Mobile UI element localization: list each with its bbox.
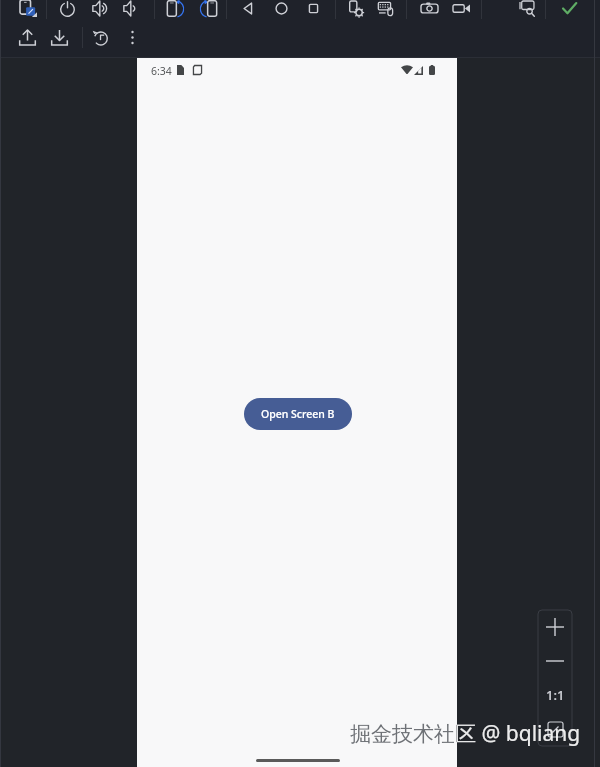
staticText: 掘金技术社区 @ bqliang (350, 719, 457, 748)
button[interactable]: Upload (14, 26, 40, 48)
button[interactable]: 1:1 (538, 678, 572, 712)
button[interactable]: Rotate right (195, 0, 221, 19)
button[interactable]: Download (46, 26, 72, 48)
button[interactable]: Zoom out (538, 644, 572, 678)
staticText: Open Screen B (261, 407, 335, 421)
button[interactable]: Rotate left (162, 0, 188, 19)
button[interactable]: Virtual keyboard (373, 0, 399, 19)
button[interactable]: Volume up (87, 0, 113, 19)
button[interactable]: Open Screen B (244, 398, 352, 430)
staticText: 1:1 (546, 686, 565, 704)
button[interactable]: More options (119, 26, 145, 48)
button[interactable]: Take screenshot (416, 0, 442, 19)
button[interactable]: Record screen (448, 0, 474, 19)
button[interactable]: Zoom in (538, 610, 572, 644)
button[interactable]: Apply (556, 0, 582, 19)
button[interactable]: History (87, 26, 113, 48)
button[interactable]: Device settings (343, 0, 369, 19)
button[interactable]: Volume down (118, 0, 144, 19)
button[interactable]: Back (235, 0, 261, 19)
button[interactable]: Overview (300, 0, 326, 19)
button[interactable]: Screen mirroring (15, 0, 41, 19)
button[interactable]: Inspect layout (514, 0, 540, 19)
staticText: 掘金技术社区 @ bqliang (350, 719, 581, 748)
button[interactable]: Power (54, 0, 80, 19)
staticText: 6:34 (151, 64, 172, 78)
button[interactable]: Home (268, 0, 294, 19)
button[interactable]: Fit to screen (538, 712, 572, 746)
